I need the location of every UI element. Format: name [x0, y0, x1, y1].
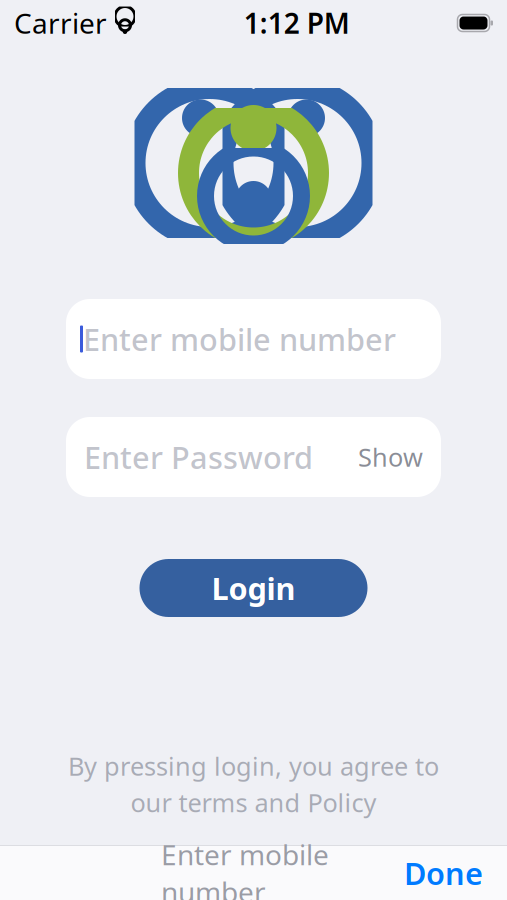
- staticText: Login: [211, 568, 295, 608]
- staticText: 1:12 PM: [244, 4, 350, 42]
- staticText: Done: [404, 853, 483, 893]
- button[interactable]: Done: [390, 845, 497, 900]
- staticText: Enter mobile number: [83, 319, 396, 359]
- button[interactable]: Enter mobile number: [66, 299, 441, 379]
- button[interactable]: Login: [139, 559, 367, 617]
- button[interactable]: Enter Password: [66, 417, 441, 497]
- staticText: Enter mobile number: [161, 836, 329, 900]
- staticText: Carrier: [14, 4, 107, 42]
- staticText: Show: [358, 440, 423, 474]
- staticText: Enter Password: [84, 437, 313, 477]
- staticText: our terms and Policy: [130, 786, 376, 819]
- staticText: By pressing login, you agree to: [68, 749, 439, 783]
